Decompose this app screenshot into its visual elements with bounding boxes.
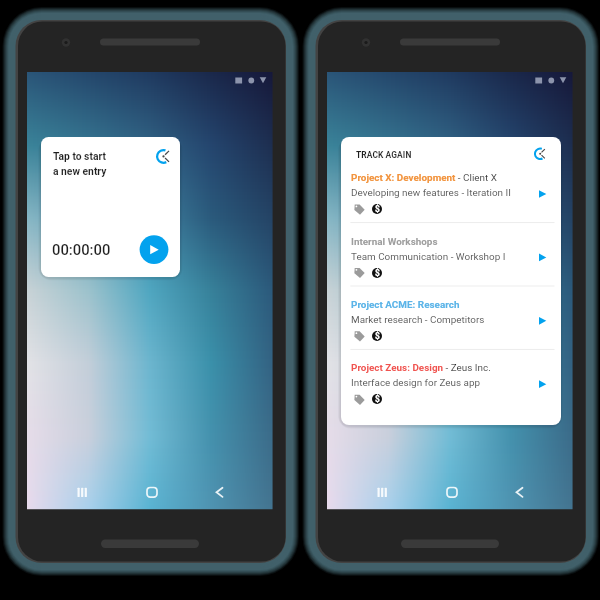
button[interactable]: Start Project Zeus: Design bbox=[535, 376, 551, 392]
button[interactable]: Start Project X: Development bbox=[535, 186, 551, 202]
staticText: Project ACME: Research bbox=[351, 299, 460, 311]
staticText: 00:00:00 bbox=[52, 241, 111, 258]
staticText: $ bbox=[375, 268, 380, 278]
button[interactable]: Project Zeus: Design - Zeus Inc. bbox=[341, 349, 561, 412]
staticText: TRACK AGAIN bbox=[356, 150, 412, 160]
button[interactable]: Back bbox=[210, 481, 232, 503]
button[interactable]: Start Project ACME: Research bbox=[535, 313, 551, 329]
staticText: Project X: Development - Client X bbox=[351, 172, 497, 184]
button[interactable]: Recent apps bbox=[371, 481, 393, 503]
button[interactable]: Recent apps bbox=[71, 481, 93, 503]
button[interactable]: Project X: Development - Client X bbox=[341, 159, 561, 222]
staticText: Tap to start bbox=[53, 150, 106, 162]
staticText: Project Zeus: Design - Zeus Inc. bbox=[351, 362, 491, 374]
button[interactable]: Back bbox=[510, 481, 532, 503]
staticText: Team Communication - Workshop I bbox=[351, 251, 506, 263]
button[interactable]: Internal Workshops bbox=[341, 223, 561, 286]
button[interactable]: Home bbox=[441, 481, 463, 503]
button[interactable]: Clockify bbox=[156, 148, 172, 164]
button[interactable]: Project ACME: Research bbox=[341, 286, 561, 349]
button[interactable]: Clockify bbox=[532, 146, 548, 162]
staticText: Internal Workshops bbox=[351, 236, 438, 248]
button[interactable]: Home bbox=[141, 481, 163, 503]
staticText: Developing new features - Iteration II bbox=[351, 187, 511, 199]
staticText: Interface design for Zeus app bbox=[351, 377, 481, 389]
staticText: $ bbox=[375, 204, 380, 214]
staticText: a new entry bbox=[53, 165, 107, 177]
button[interactable]: Start timer bbox=[140, 235, 169, 264]
button[interactable]: Start Internal Workshops bbox=[535, 250, 551, 266]
staticText: Market research - Competitors bbox=[351, 314, 485, 326]
button[interactable]: Tap to start bbox=[41, 137, 180, 277]
staticText: $ bbox=[375, 394, 380, 404]
staticText: $ bbox=[375, 331, 380, 341]
